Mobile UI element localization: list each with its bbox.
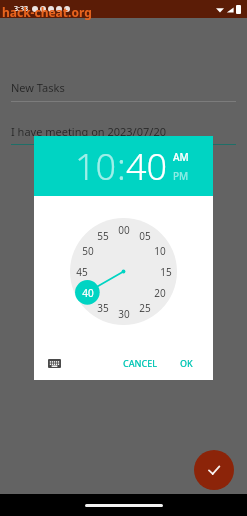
- staticText: 10: [154, 244, 166, 258]
- button[interactable]: 20: [149, 282, 171, 304]
- button[interactable]: PM: [173, 169, 189, 183]
- button[interactable]: [70, 218, 177, 325]
- staticText: CANCEL: [123, 357, 158, 369]
- button[interactable]: 35: [92, 297, 114, 319]
- button[interactable]: 25: [134, 297, 156, 319]
- staticText: New Tasks: [11, 80, 65, 95]
- staticText: :: [117, 142, 126, 191]
- button[interactable]: 00: [113, 219, 135, 241]
- button[interactable]: 10: [75, 142, 117, 191]
- button[interactable]: 55: [92, 225, 114, 247]
- button[interactable]: 15: [155, 261, 177, 283]
- staticText: 45: [76, 265, 88, 279]
- staticText: I have meeting on 2023/07/20: [11, 124, 166, 139]
- button[interactable]: CANCEL: [117, 353, 164, 373]
- staticText: 20: [154, 286, 166, 300]
- button[interactable]: 40: [126, 142, 168, 191]
- staticText: 15: [160, 265, 172, 279]
- staticText: hack-cheat.org: [2, 4, 92, 20]
- staticText: 40: [82, 286, 94, 300]
- button[interactable]: Save task: [194, 450, 234, 490]
- button[interactable]: 50: [77, 240, 99, 262]
- staticText: 25: [139, 301, 151, 315]
- staticText: 55: [97, 229, 109, 243]
- staticText: 3:33: [14, 4, 28, 14]
- staticText: 30: [118, 307, 130, 321]
- button[interactable]: 10: [149, 240, 171, 262]
- staticText: 35: [97, 301, 109, 315]
- staticText: 50: [82, 244, 94, 258]
- staticText: 00: [118, 223, 130, 237]
- button[interactable]: OK: [174, 353, 199, 373]
- button[interactable]: 45: [71, 261, 93, 283]
- button[interactable]: 30: [113, 303, 135, 325]
- button[interactable]: 40: [77, 282, 99, 304]
- staticText: 05: [139, 229, 151, 243]
- button[interactable]: 05: [134, 225, 156, 247]
- button[interactable]: AM: [173, 150, 189, 164]
- button[interactable]: Switch to text input: [44, 353, 64, 373]
- staticText: OK: [180, 357, 193, 369]
